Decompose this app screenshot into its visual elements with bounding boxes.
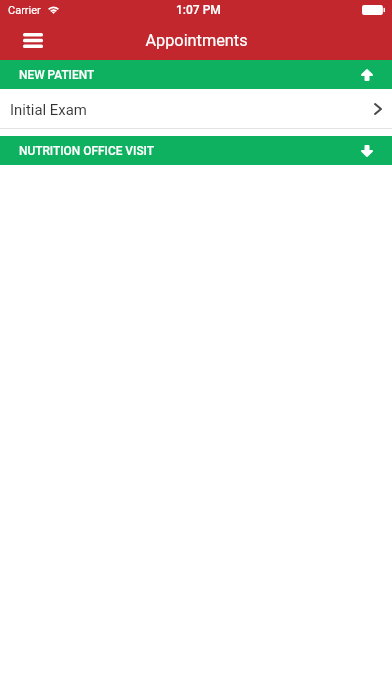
staticText: Carrier bbox=[8, 4, 41, 17]
button[interactable]: Menu bbox=[13, 20, 53, 60]
button[interactable]: Initial Exam bbox=[0, 89, 392, 128]
staticText: Appointments bbox=[145, 31, 248, 50]
staticText: NUTRITION OFFICE VISIT bbox=[19, 144, 154, 158]
button[interactable]: NUTRITION OFFICE VISIT bbox=[0, 136, 392, 165]
staticText: NEW PATIENT bbox=[19, 68, 95, 82]
staticText: Initial Exam bbox=[10, 101, 374, 118]
button[interactable]: NEW PATIENT bbox=[0, 60, 392, 89]
staticText: 1:07 PM bbox=[176, 3, 221, 17]
other: Open Initial Exam bbox=[374, 103, 382, 115]
